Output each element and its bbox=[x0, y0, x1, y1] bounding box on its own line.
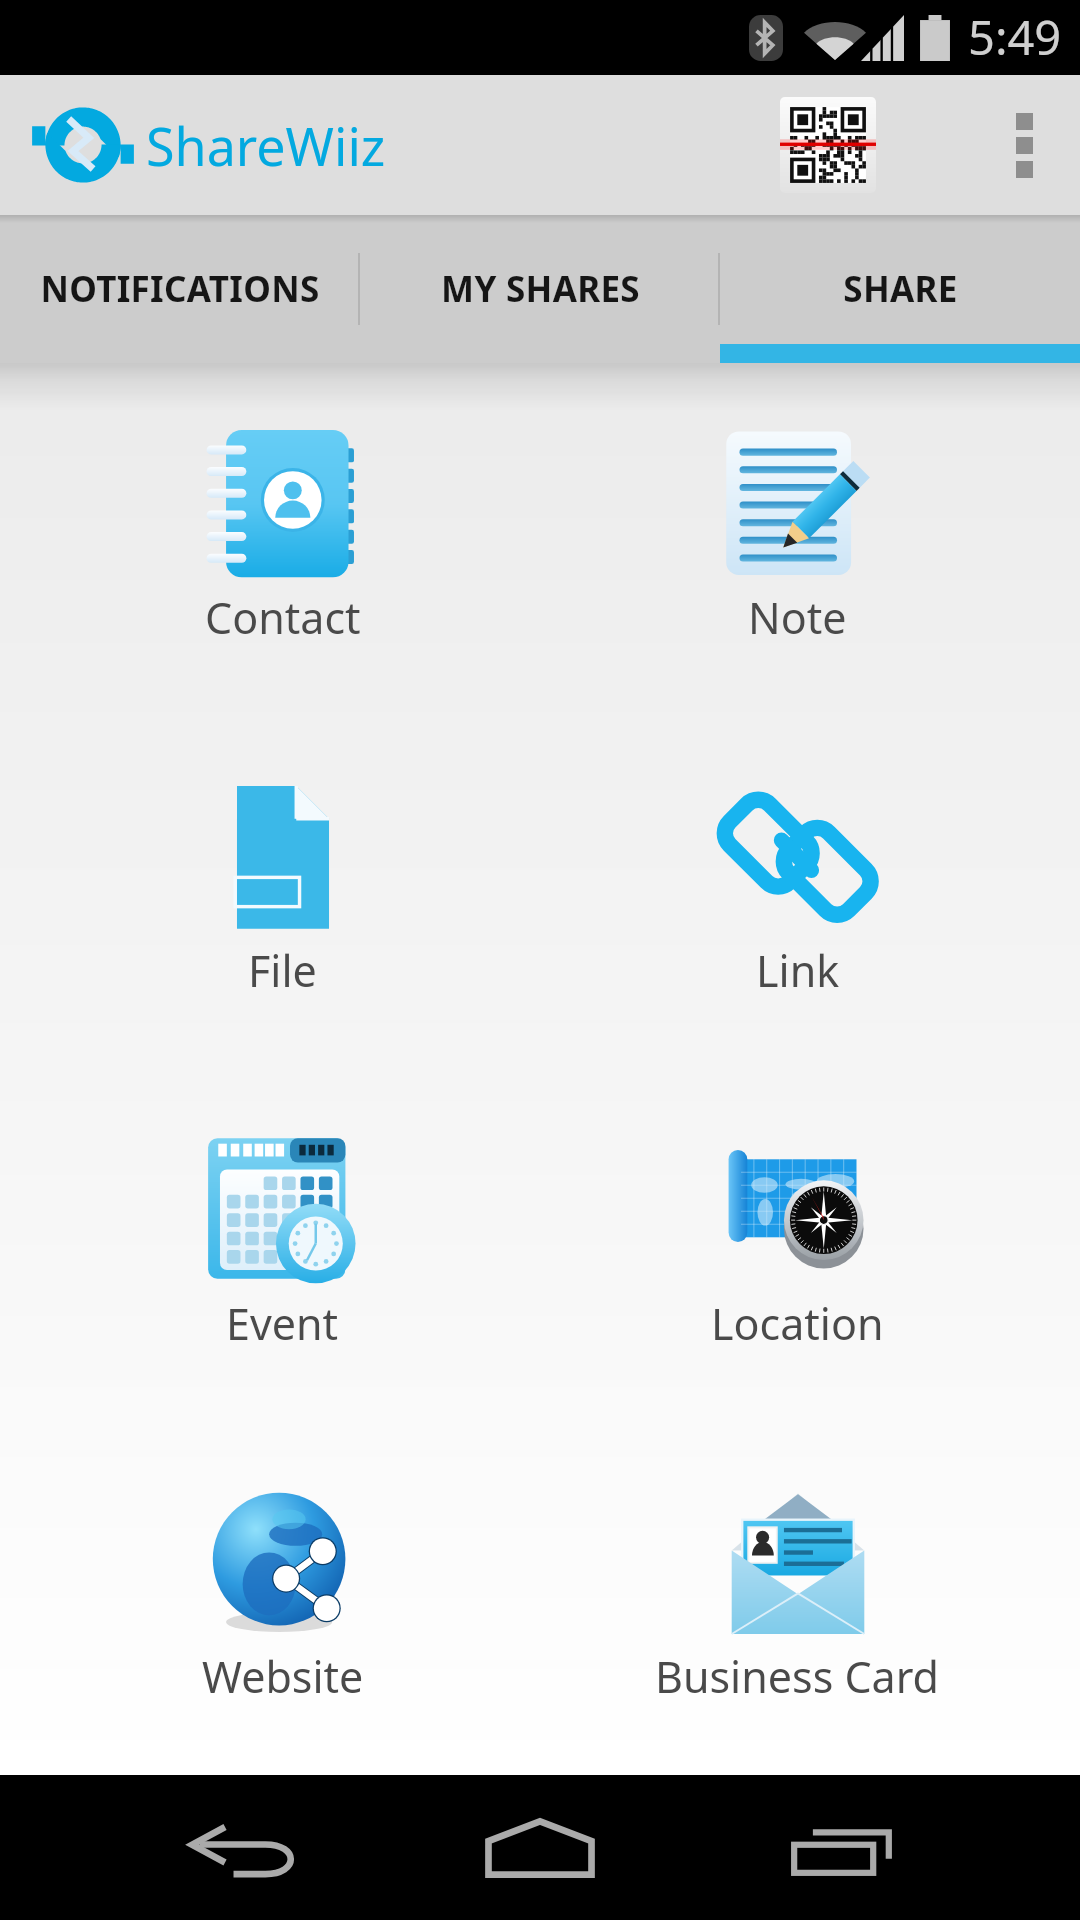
button[interactable]: Website bbox=[25, 1422, 540, 1775]
staticText: 5:49 bbox=[968, 5, 1062, 69]
button[interactable]: Scan QR code bbox=[770, 75, 886, 215]
button[interactable]: NOTIFICATIONS bbox=[0, 215, 360, 363]
staticText: Note bbox=[748, 588, 847, 647]
staticText: Location bbox=[711, 1294, 884, 1353]
staticText: ShareWiiz bbox=[146, 110, 386, 181]
button[interactable]: ShareWiiz bbox=[30, 105, 386, 185]
button[interactable]: MY SHARES bbox=[360, 215, 720, 363]
staticText: File bbox=[248, 941, 317, 1000]
button[interactable]: Link bbox=[540, 716, 1055, 1069]
button[interactable]: Back bbox=[172, 1775, 312, 1920]
staticText: SHARE bbox=[843, 265, 958, 313]
button[interactable]: Recent apps bbox=[772, 1775, 912, 1920]
button[interactable]: File bbox=[25, 716, 540, 1069]
button[interactable]: Business Card bbox=[540, 1422, 1055, 1775]
button[interactable]: SHARE bbox=[720, 215, 1080, 363]
staticText: NOTIFICATIONS bbox=[40, 265, 320, 313]
button[interactable]: Contact bbox=[25, 363, 540, 716]
staticText: Event bbox=[226, 1294, 339, 1353]
staticText: Contact bbox=[205, 588, 361, 647]
button[interactable]: Note bbox=[540, 363, 1055, 716]
button[interactable]: Event bbox=[25, 1069, 540, 1422]
staticText: Business Card bbox=[655, 1647, 940, 1706]
staticText: Link bbox=[756, 941, 840, 1000]
button[interactable]: More options bbox=[968, 75, 1080, 215]
button[interactable]: Home bbox=[465, 1775, 615, 1920]
staticText: MY SHARES bbox=[441, 265, 640, 313]
staticText: Website bbox=[202, 1647, 364, 1706]
button[interactable]: Location bbox=[540, 1069, 1055, 1422]
